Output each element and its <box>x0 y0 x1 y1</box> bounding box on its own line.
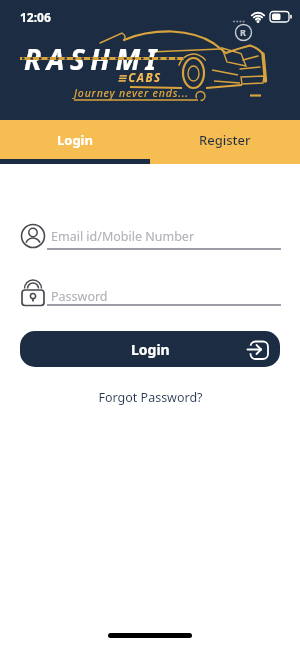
button[interactable]: Login <box>20 331 280 367</box>
button[interactable]: Register <box>150 120 300 164</box>
staticText: RASHMI <box>24 40 162 78</box>
button[interactable] <box>20 276 281 308</box>
staticText: Register <box>199 131 251 149</box>
button[interactable]: Login <box>0 120 150 164</box>
staticText: R <box>240 26 246 38</box>
staticText: Login <box>57 131 93 149</box>
staticText: Password <box>51 288 108 305</box>
staticText: Login <box>131 340 170 359</box>
staticText: Journey never ends... <box>74 86 189 100</box>
staticText: 12:06 <box>20 9 51 25</box>
button[interactable] <box>20 220 281 252</box>
staticText: Email id/Mobile Number <box>51 228 195 245</box>
staticText: Forgot Password? <box>98 389 203 406</box>
button[interactable]: Forgot Password? <box>0 388 300 406</box>
staticText: ≡CABS <box>117 70 162 86</box>
